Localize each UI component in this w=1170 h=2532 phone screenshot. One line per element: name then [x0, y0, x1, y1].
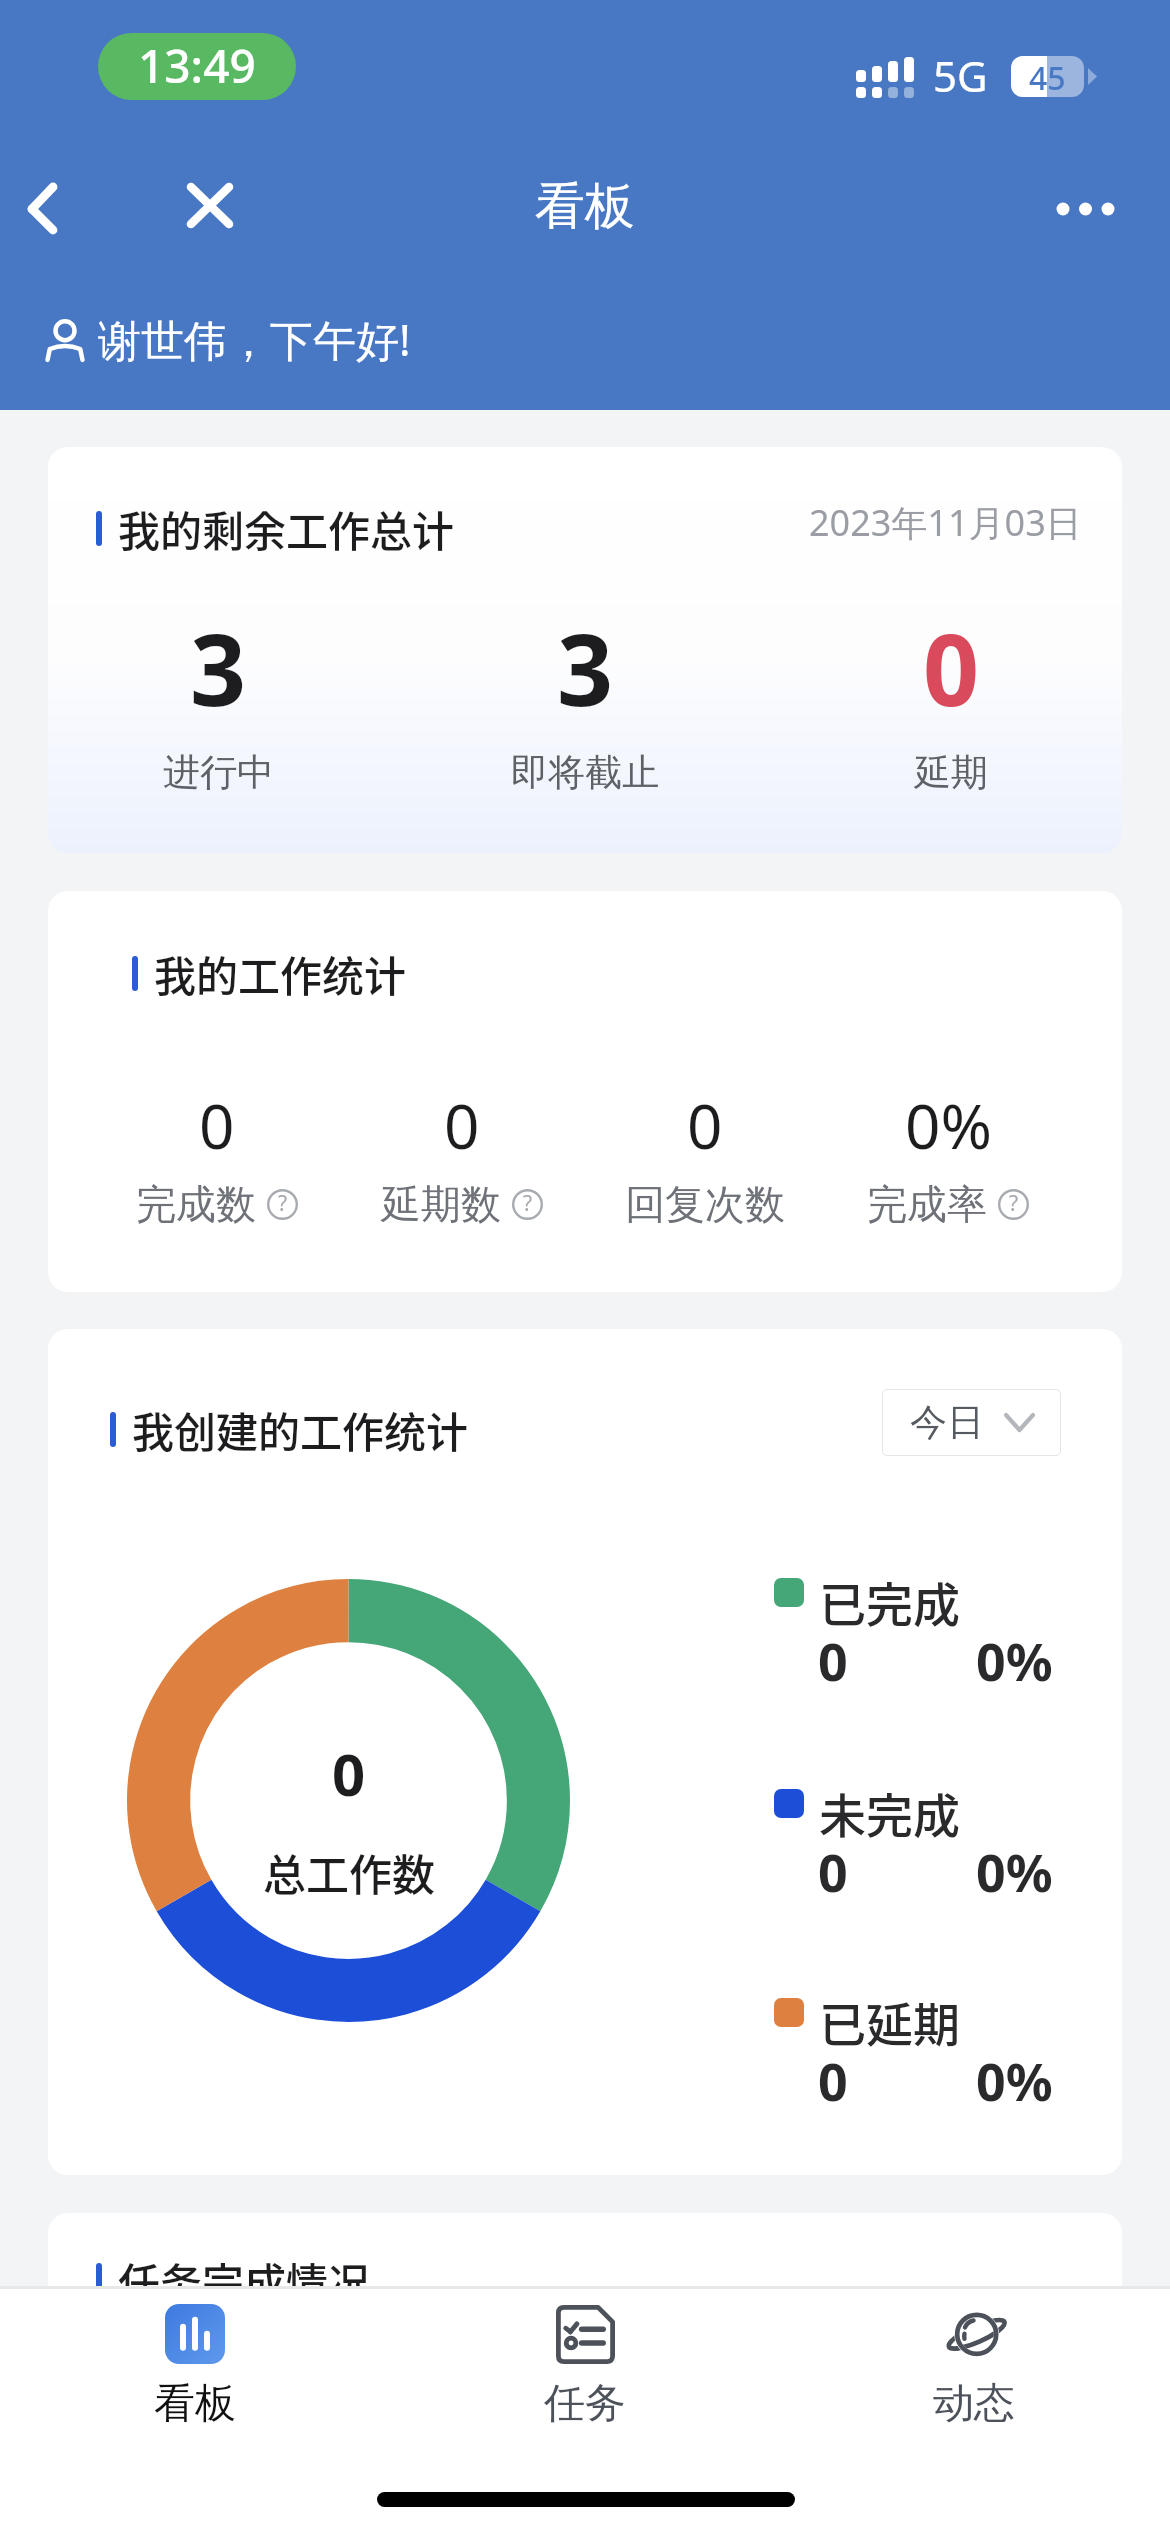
- staticText: 总工作数: [263, 1841, 435, 1903]
- staticText: 0: [818, 1836, 848, 1907]
- staticText: 0: [199, 1083, 235, 1167]
- button[interactable]: 今日: [882, 1389, 1061, 1456]
- button[interactable]: 看板: [45, 2286, 345, 2486]
- staticText: 0%: [905, 1083, 992, 1167]
- staticText: 0: [332, 1734, 366, 1813]
- button[interactable]: Close: [176, 171, 244, 240]
- staticText: 0: [687, 1083, 723, 1167]
- staticText: 回复次数: [625, 1179, 785, 1229]
- button[interactable]: 已延期: [774, 1997, 1104, 2127]
- staticText: 0%: [976, 2045, 1053, 2116]
- staticText: 0: [923, 601, 980, 734]
- staticText: ?: [278, 1189, 288, 1218]
- staticText: 看板: [0, 175, 1170, 238]
- button[interactable]: 3: [108, 601, 328, 796]
- staticText: 延期数: [381, 1179, 501, 1229]
- button[interactable]: 未完成: [774, 1788, 1104, 1918]
- staticText: 未完成: [819, 1778, 960, 1846]
- button[interactable]: 0: [583, 1083, 827, 1229]
- staticText: ?: [1009, 1189, 1019, 1218]
- staticText: 进行中: [163, 749, 274, 796]
- staticText: 我创建的工作统计: [132, 1399, 469, 1460]
- button[interactable]: Back: [10, 170, 76, 248]
- staticText: 3: [557, 601, 614, 734]
- staticText: 已完成: [819, 1567, 960, 1635]
- staticText: 完成率: [867, 1179, 987, 1229]
- staticText: 动态: [933, 2378, 1015, 2430]
- staticText: 3: [190, 601, 247, 734]
- button[interactable]: 3: [475, 601, 695, 796]
- staticText: 完成数: [136, 1179, 256, 1229]
- staticText: 0: [444, 1083, 480, 1167]
- staticText: 5G: [933, 47, 988, 104]
- button[interactable]: 0: [95, 1083, 339, 1229]
- staticText: 我的工作统计: [154, 943, 407, 1004]
- staticText: ?: [523, 1189, 533, 1218]
- staticText: 0%: [976, 1836, 1053, 1907]
- staticText: 任务: [544, 2378, 626, 2430]
- staticText: 看板: [154, 2378, 236, 2430]
- staticText: 我的剩余工作总计: [118, 498, 455, 559]
- staticText: 即将截止: [511, 749, 659, 796]
- staticText: 2023年11月03日: [809, 498, 1082, 547]
- staticText: 今日: [910, 1399, 984, 1446]
- staticText: 0: [818, 1625, 848, 1696]
- staticText: 任务完成情况: [118, 2250, 371, 2311]
- button[interactable]: 0: [340, 1083, 584, 1229]
- button[interactable]: 已完成: [774, 1577, 1104, 1707]
- staticText: 13:49: [138, 34, 256, 97]
- staticText: 45: [1029, 56, 1066, 97]
- button[interactable]: 0%: [826, 1083, 1070, 1229]
- button[interactable]: More options: [1040, 185, 1128, 233]
- staticText: 0: [818, 2045, 848, 2116]
- button[interactable]: 任务: [435, 2286, 735, 2486]
- staticText: 延期: [914, 749, 988, 796]
- staticText: 谢世伟，下午好!: [98, 310, 411, 369]
- button[interactable]: 动态: [824, 2286, 1124, 2486]
- staticText: 已延期: [819, 1987, 960, 2055]
- staticText: 0%: [976, 1625, 1053, 1696]
- button[interactable]: 0: [841, 601, 1061, 796]
